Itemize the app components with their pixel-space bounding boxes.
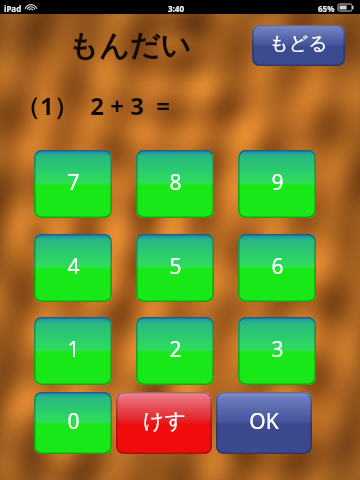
staticText: 6 [271, 252, 284, 281]
button[interactable]: 5 [136, 234, 214, 302]
button[interactable]: 7 [34, 150, 112, 218]
staticText: OK [249, 407, 279, 436]
staticText: 7 [67, 168, 80, 197]
staticText: 4 [67, 252, 80, 281]
staticText: 2 [169, 335, 182, 364]
staticText: 3 [271, 335, 284, 364]
staticText: 3:40 [168, 3, 184, 14]
staticText: もどる [269, 32, 328, 56]
staticText: もんだい [68, 27, 191, 65]
staticText: 8 [169, 168, 182, 197]
staticText: iPad [4, 3, 22, 14]
staticText: （1） 2 + 3 = [16, 89, 171, 122]
staticText: けす [143, 408, 186, 434]
button[interactable]: 6 [238, 234, 316, 302]
staticText: 65% [318, 3, 335, 14]
button[interactable]: 8 [136, 150, 214, 218]
staticText: 5 [169, 252, 182, 281]
button[interactable]: 9 [238, 150, 316, 218]
button[interactable]: OK [216, 392, 312, 454]
button[interactable]: けす [116, 392, 212, 454]
button[interactable]: 1 [34, 317, 112, 385]
staticText: 0 [67, 407, 80, 436]
button[interactable]: 2 [136, 317, 214, 385]
button[interactable]: 3 [238, 317, 316, 385]
staticText: 1 [67, 335, 80, 364]
staticText: 9 [271, 168, 284, 197]
button[interactable]: 4 [34, 234, 112, 302]
button[interactable]: もどる [252, 25, 345, 66]
button[interactable]: 0 [34, 392, 112, 454]
